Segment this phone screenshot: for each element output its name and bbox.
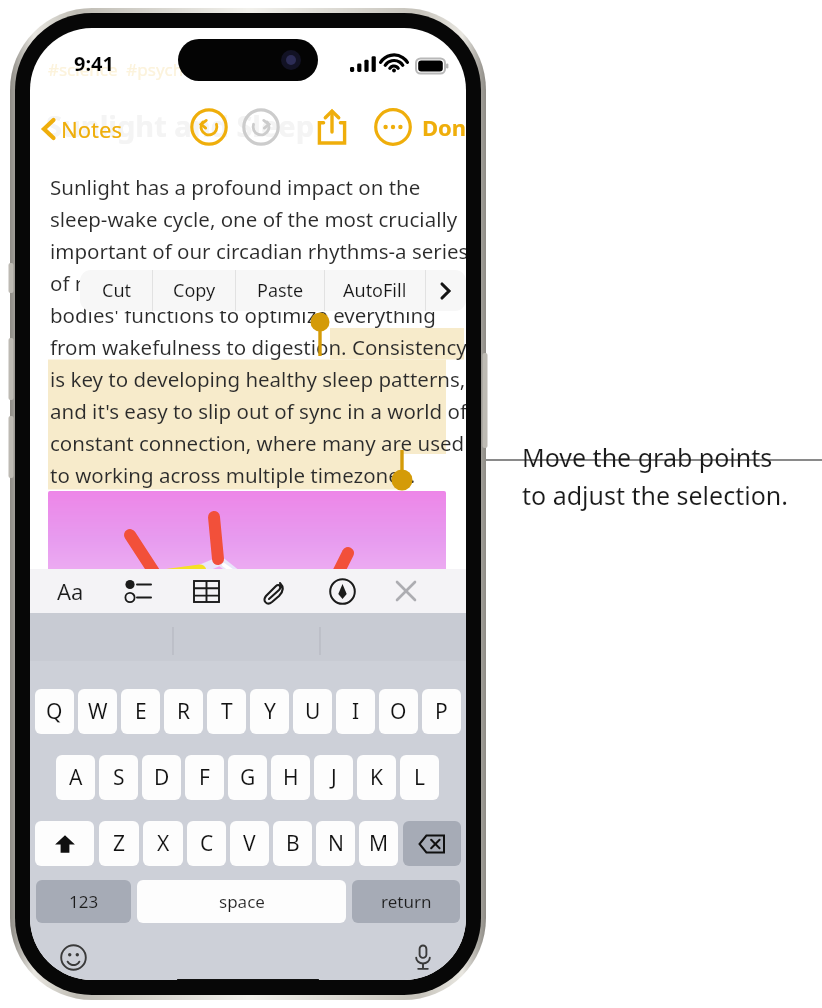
button[interactable]: X [143, 821, 183, 866]
button[interactable]: N [316, 821, 355, 866]
staticText: Aa [57, 576, 84, 606]
staticText: J [331, 763, 337, 792]
button[interactable]: E [121, 689, 160, 734]
staticText: O [390, 697, 407, 726]
button[interactable]: Emoji [56, 940, 90, 974]
staticText: A [69, 763, 83, 792]
button[interactable]: Markup [320, 571, 364, 611]
staticText: Cut [102, 278, 131, 303]
staticText: X [157, 829, 170, 858]
staticText: 9:41 [74, 50, 114, 77]
staticText: P [435, 697, 448, 726]
button[interactable]: P [422, 689, 461, 734]
button[interactable]: W [78, 689, 117, 734]
staticText: sleep-wake cycle, one of the most crucia… [50, 205, 458, 237]
staticText: L [414, 763, 426, 792]
staticText: space [219, 890, 265, 913]
staticText: to adjust the selection. [522, 478, 788, 512]
staticText: B [286, 829, 300, 858]
staticText: G [240, 763, 256, 792]
staticText: 123 [69, 890, 99, 913]
button[interactable]: T [207, 689, 246, 734]
staticText: R [177, 697, 191, 726]
button[interactable]: AutoFill [325, 270, 425, 311]
staticText: return [381, 890, 432, 913]
staticText: V [243, 829, 256, 858]
button[interactable]: L [400, 755, 439, 800]
button[interactable]: Done [418, 108, 466, 146]
staticText: and it's easy to slip out of sync in a w… [50, 397, 466, 429]
staticText: F [199, 763, 210, 792]
button[interactable]: J [314, 755, 353, 800]
staticText: from wakefulness to digestion. Consisten… [50, 333, 466, 365]
button[interactable]: R [164, 689, 203, 734]
button[interactable]: M [359, 821, 398, 866]
staticText: Y [264, 697, 276, 726]
button[interactable]: Notes [36, 110, 126, 148]
staticText: bodies' functions to optimize everything [50, 301, 436, 333]
staticText: U [305, 697, 321, 726]
button[interactable]: Close keyboard [384, 571, 428, 611]
staticText: C [200, 829, 214, 858]
staticText: of natural processes that regulate our [50, 269, 414, 301]
button[interactable]: Attach [252, 571, 296, 611]
button[interactable]: Table [184, 571, 228, 611]
staticText: H [283, 763, 299, 792]
button[interactable]: O [379, 689, 418, 734]
button[interactable]: Z [99, 821, 139, 866]
staticText: D [154, 763, 170, 792]
staticText: Paste [257, 278, 304, 303]
button[interactable]: G [228, 755, 267, 800]
staticText: I [352, 697, 360, 726]
button[interactable]: Text format [48, 571, 92, 611]
button[interactable]: Delete [403, 821, 461, 866]
button[interactable]: V [230, 821, 269, 866]
staticText: Copy [173, 278, 216, 303]
button[interactable]: More actions [426, 270, 466, 311]
button[interactable]: U [293, 689, 332, 734]
button[interactable]: D [142, 755, 181, 800]
button[interactable]: B [273, 821, 312, 866]
button[interactable]: 123 [36, 880, 131, 923]
button[interactable]: Undo [190, 108, 228, 146]
staticText: E [135, 697, 147, 726]
staticText: AutoFill [343, 278, 407, 303]
button[interactable]: Copy [153, 270, 235, 311]
staticText: S [113, 763, 125, 792]
staticText: Done [422, 112, 466, 142]
staticText: is key to developing healthy sleep patte… [50, 365, 466, 397]
button[interactable]: A [56, 755, 95, 800]
button[interactable]: Y [250, 689, 289, 734]
staticText: constant connection, where many are used [50, 429, 465, 461]
button[interactable]: F [185, 755, 224, 800]
button[interactable]: H [271, 755, 310, 800]
button[interactable]: I [336, 689, 375, 734]
button[interactable]: Checklist [116, 571, 160, 611]
button[interactable]: Shift [35, 821, 94, 866]
button[interactable]: Share [311, 106, 353, 148]
button[interactable]: S [99, 755, 138, 800]
button[interactable]: C [187, 821, 226, 866]
button[interactable]: Dictation [406, 940, 440, 974]
staticText: Move the grab points [522, 440, 773, 474]
staticText: W [88, 697, 108, 726]
staticText: T [221, 697, 233, 726]
button[interactable]: More options [374, 108, 412, 146]
button[interactable]: Paste [236, 270, 324, 311]
staticText: Sunlight and Sleep [46, 106, 314, 145]
staticText: Q [46, 697, 63, 726]
button[interactable]: Redo [242, 108, 280, 146]
staticText: Z [113, 829, 126, 858]
button[interactable]: Q [35, 689, 74, 734]
button[interactable]: Cut [80, 270, 152, 311]
button[interactable]: return [352, 880, 460, 923]
staticText: K [370, 763, 383, 792]
button[interactable]: space [137, 880, 346, 923]
staticText: M [369, 829, 389, 858]
staticText: N [328, 829, 344, 858]
staticText: Sunlight has a profound impact on the [50, 173, 421, 205]
staticText: to working across multiple timezones. [50, 461, 416, 493]
staticText: #science #psychology [48, 58, 228, 81]
staticText: important of our circadian rhythms-a ser… [50, 237, 466, 269]
button[interactable]: K [357, 755, 396, 800]
